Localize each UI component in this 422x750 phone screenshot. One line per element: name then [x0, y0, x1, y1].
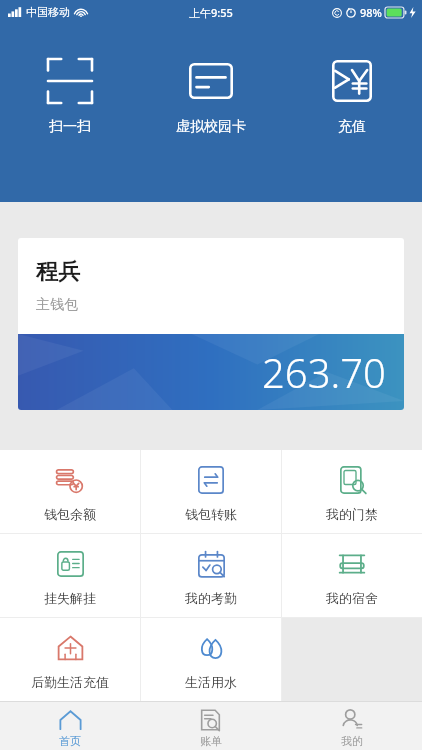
- staticText: 首页: [59, 734, 81, 748]
- button[interactable]: 首页: [0, 702, 140, 750]
- button[interactable]: 我的: [281, 702, 422, 750]
- staticText: 98%: [360, 5, 382, 20]
- staticText: 钱包转账: [185, 506, 237, 522]
- staticText: 程兵: [36, 258, 80, 286]
- button[interactable]: 我的考勤: [141, 534, 281, 617]
- staticText: 上午9:55: [189, 5, 233, 20]
- button[interactable]: 扫一扫: [0, 24, 140, 202]
- staticText: 生活用水: [185, 674, 237, 690]
- staticText: 我的门禁: [326, 506, 378, 522]
- staticText: 充值: [338, 118, 366, 136]
- staticText: 挂失解挂: [44, 590, 96, 606]
- button[interactable]: 后勤生活充值: [0, 618, 140, 701]
- button[interactable]: 程兵: [18, 238, 404, 410]
- staticText: 钱包余额: [44, 506, 96, 522]
- button[interactable]: 账单: [140, 702, 281, 750]
- staticText: 我的宿舍: [326, 590, 378, 606]
- button[interactable]: 钱包转账: [141, 450, 281, 533]
- staticText: 主钱包: [36, 296, 78, 314]
- button[interactable]: 生活用水: [141, 618, 281, 701]
- button[interactable]: 虚拟校园卡: [140, 24, 281, 202]
- button[interactable]: 我的宿舍: [282, 534, 422, 617]
- staticText: 后勤生活充值: [31, 674, 109, 690]
- button[interactable]: 钱包余额: [0, 450, 140, 533]
- button[interactable]: 挂失解挂: [0, 534, 140, 617]
- staticText: 中国移动: [26, 5, 70, 19]
- staticText: 扫一扫: [49, 118, 91, 136]
- button[interactable]: 充值: [281, 24, 422, 202]
- staticText: 263.70: [262, 345, 386, 399]
- staticText: 虚拟校园卡: [176, 118, 246, 136]
- staticText: 账单: [200, 734, 222, 748]
- button[interactable]: 我的门禁: [282, 450, 422, 533]
- staticText: 我的: [341, 734, 363, 748]
- staticText: 我的考勤: [185, 590, 237, 606]
